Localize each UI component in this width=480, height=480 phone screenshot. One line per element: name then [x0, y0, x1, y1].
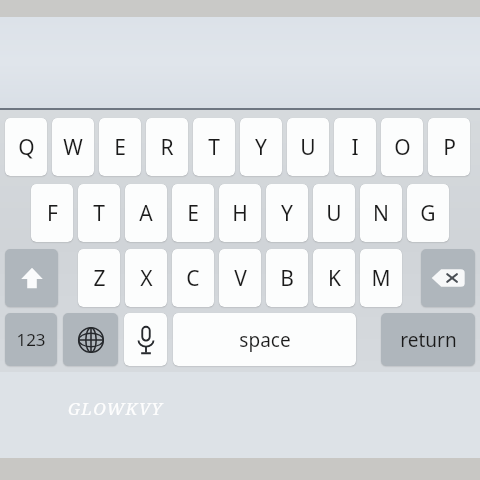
staticText: K — [328, 264, 341, 293]
staticText: E — [187, 199, 199, 228]
staticText: Q — [18, 133, 35, 162]
staticText: X — [140, 264, 153, 293]
button[interactable]: E — [172, 184, 214, 242]
staticText: E — [114, 133, 126, 162]
staticText: M — [371, 264, 391, 293]
button[interactable]: M — [360, 249, 402, 307]
staticText: GLOWKVY — [68, 397, 164, 420]
button[interactable]: U — [313, 184, 355, 242]
staticText: U — [300, 133, 316, 162]
staticText: O — [394, 133, 411, 162]
button[interactable]: Y — [240, 118, 282, 176]
button[interactable]: E — [99, 118, 141, 176]
button[interactable]: Shift — [5, 249, 58, 307]
button[interactable]: V — [219, 249, 261, 307]
staticText: V — [234, 264, 247, 293]
staticText: Y — [255, 133, 267, 162]
staticText: T — [93, 199, 105, 228]
button[interactable]: W — [52, 118, 94, 176]
button[interactable]: G — [407, 184, 449, 242]
staticText: I — [351, 133, 359, 162]
staticText: C — [186, 264, 200, 293]
staticText: return — [400, 327, 457, 353]
button[interactable]: B — [266, 249, 308, 307]
button[interactable]: R — [146, 118, 188, 176]
button[interactable]: P — [428, 118, 470, 176]
staticText: U — [326, 199, 342, 228]
staticText: H — [232, 199, 248, 228]
button[interactable]: A — [125, 184, 167, 242]
button[interactable]: H — [219, 184, 261, 242]
staticText: Z — [93, 264, 106, 293]
button[interactable]: Voice input — [124, 313, 167, 366]
staticText: F — [47, 199, 58, 228]
staticText: N — [373, 199, 389, 228]
button[interactable]: T — [78, 184, 120, 242]
button[interactable]: Z — [78, 249, 120, 307]
staticText: P — [443, 133, 456, 162]
button[interactable]: T — [193, 118, 235, 176]
staticText: Y — [281, 199, 293, 228]
button[interactable]: Backspace — [421, 249, 475, 307]
staticText: G — [420, 199, 436, 228]
button[interactable]: K — [313, 249, 355, 307]
staticText: space — [239, 327, 291, 353]
button[interactable]: Q — [5, 118, 47, 176]
button[interactable]: C — [172, 249, 214, 307]
button[interactable]: I — [334, 118, 376, 176]
button[interactable]: N — [360, 184, 402, 242]
staticText: B — [280, 264, 294, 293]
button[interactable]: X — [125, 249, 167, 307]
button[interactable]: O — [381, 118, 423, 176]
button[interactable]: U — [287, 118, 329, 176]
button[interactable]: 123 — [5, 313, 57, 366]
staticText: R — [160, 133, 174, 162]
staticText: 123 — [16, 328, 46, 351]
staticText: A — [139, 199, 153, 228]
staticText: W — [63, 133, 83, 162]
button[interactable]: F — [31, 184, 73, 242]
staticText: T — [208, 133, 220, 162]
button[interactable]: Y — [266, 184, 308, 242]
button[interactable]: return — [381, 313, 475, 366]
button[interactable]: space — [173, 313, 356, 366]
button[interactable]: Change keyboard — [63, 313, 118, 366]
